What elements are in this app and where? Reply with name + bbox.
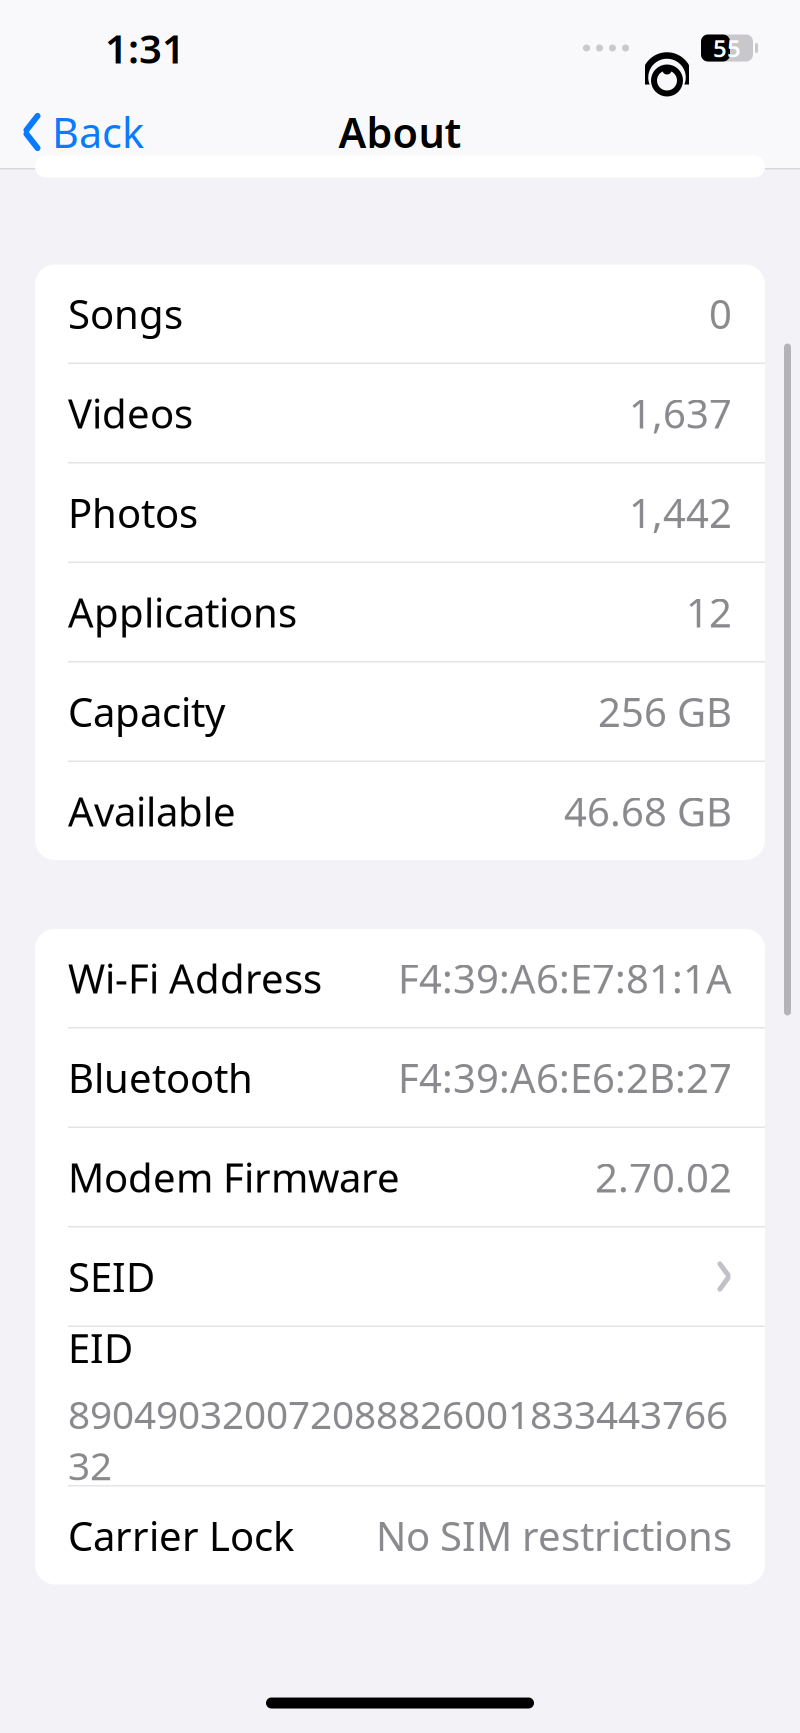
staticText: Songs (68, 287, 183, 340)
staticText: SEID (68, 1250, 155, 1303)
staticText: 55 (713, 32, 741, 64)
button[interactable]: Videos (35, 364, 765, 462)
staticText: Wi-Fi Address (68, 951, 322, 1004)
staticText: About (338, 105, 461, 159)
staticText: 2.70.02 (595, 1150, 732, 1203)
button[interactable]: Applications (35, 563, 765, 661)
staticText: 0 (709, 287, 732, 340)
staticText: 1:31 (105, 21, 185, 74)
button[interactable]: Bluetooth (35, 1028, 765, 1126)
staticText: Available (68, 784, 236, 837)
staticText: Modem Firmware (68, 1150, 400, 1203)
staticText: Photos (68, 486, 198, 539)
staticText: Carrier Lock (68, 1509, 294, 1562)
staticText: 89049032007208882600183344376632 (68, 1388, 728, 1491)
staticText: 46.68 GB (564, 784, 732, 837)
staticText: 1,637 (629, 386, 732, 439)
button[interactable]: Wi-Fi Address (35, 929, 765, 1027)
staticText: Videos (68, 386, 193, 439)
staticText: No SIM restrictions (376, 1509, 732, 1562)
staticText: F4:39:A6:E7:81:1A (398, 951, 732, 1004)
staticText: 256 GB (598, 685, 732, 738)
button[interactable]: Capacity (35, 662, 765, 760)
button[interactable]: Songs (35, 264, 765, 362)
button[interactable]: SEID (35, 1227, 765, 1325)
button[interactable]: Modem Firmware (35, 1128, 765, 1226)
staticText: 1,442 (629, 486, 732, 539)
staticText: F4:39:A6:E6:2B:27 (398, 1051, 732, 1104)
staticText: Capacity (68, 685, 225, 738)
button[interactable]: Back (0, 97, 144, 167)
staticText: EID (68, 1321, 133, 1374)
button[interactable]: Carrier Lock (35, 1486, 765, 1584)
button[interactable]: EID (35, 1327, 765, 1485)
button[interactable]: Photos (35, 463, 765, 561)
staticText: Bluetooth (68, 1051, 253, 1104)
staticText: Applications (68, 585, 297, 638)
button[interactable]: Available (35, 762, 765, 860)
staticText: 12 (686, 585, 732, 638)
staticText: Back (52, 105, 144, 159)
